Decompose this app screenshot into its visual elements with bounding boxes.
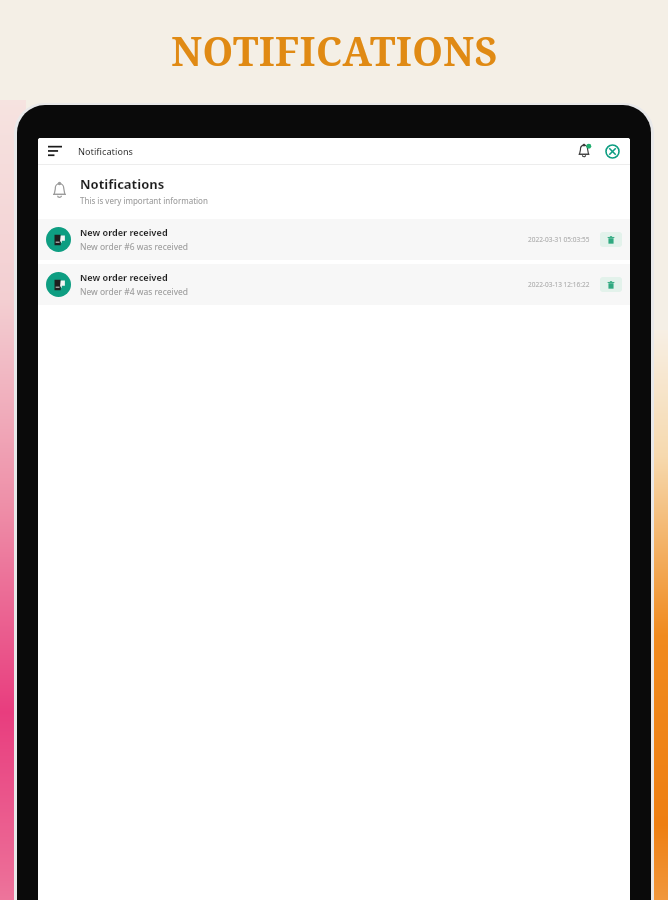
button[interactable]: Delete notification [600, 232, 622, 247]
button[interactable]: Open navigation menu [44, 140, 66, 162]
staticText: Notifications [78, 145, 133, 157]
staticText: New order received [80, 226, 168, 238]
button[interactable]: Notifications [572, 139, 596, 163]
staticText: This is very important information [80, 195, 208, 206]
button[interactable]: Close [600, 139, 624, 163]
button[interactable]: New order received [38, 219, 630, 260]
button[interactable]: New order received [38, 264, 630, 305]
staticText: New order #4 was received [80, 286, 189, 298]
staticText: Notifications [80, 175, 165, 193]
staticText: New order #6 was received [80, 241, 189, 253]
button[interactable]: Delete notification [600, 277, 622, 292]
staticText: 2022-03-13 12:16:22 [528, 280, 590, 289]
staticText: NOTIFICATIONS [171, 24, 498, 77]
staticText: 2022-03-31 05:03:55 [528, 235, 590, 244]
staticText: New order received [80, 271, 168, 283]
